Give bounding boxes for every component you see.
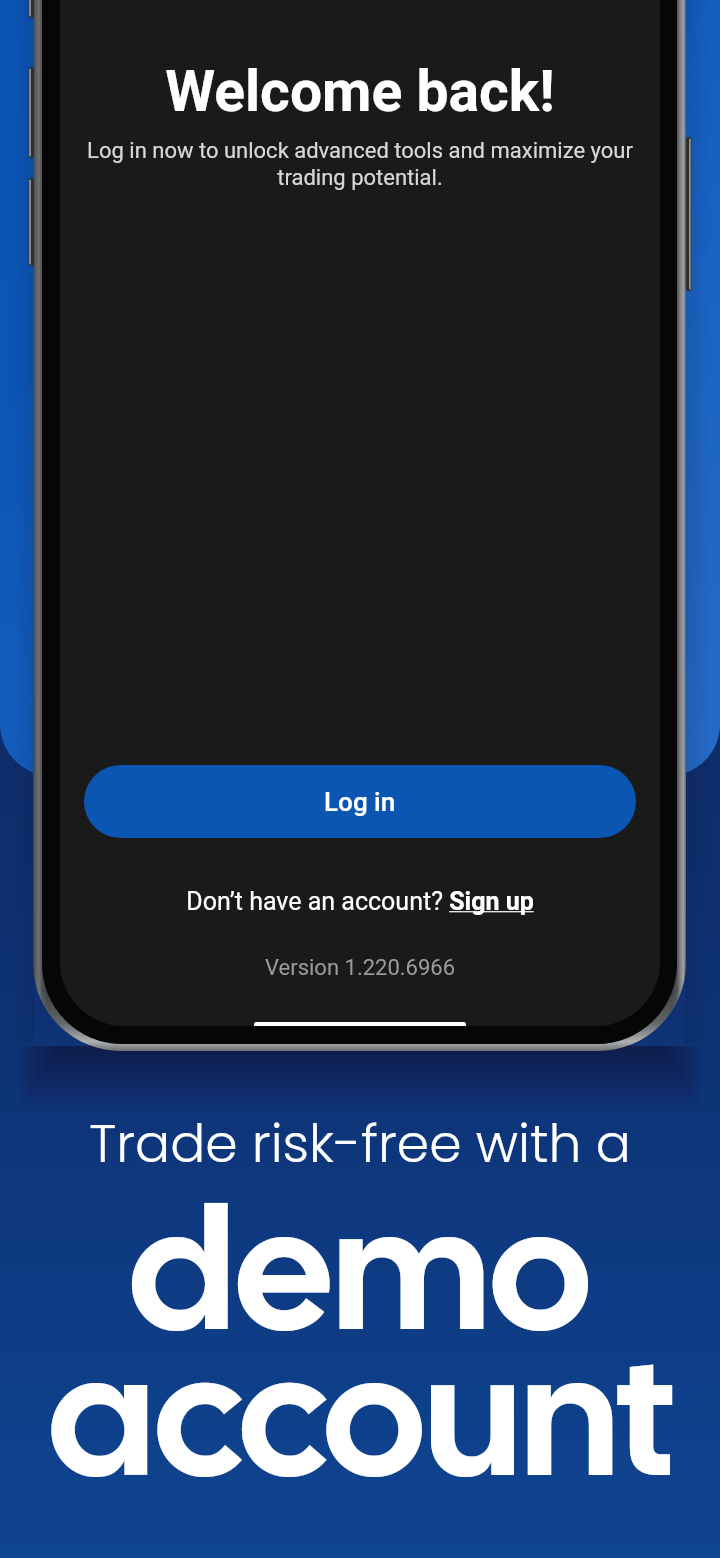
staticText: Welcome back! <box>165 58 555 125</box>
staticText: Log in <box>324 787 396 817</box>
staticText: Trade risk-free with a <box>89 1107 631 1180</box>
staticText: Don’t have an account? Sign up <box>186 887 534 916</box>
button[interactable]: Don’t have an account? Sign up <box>186 887 534 916</box>
staticText: Log in now to unlock advanced tools and … <box>86 138 634 190</box>
button[interactable]: Log in <box>84 765 636 838</box>
staticText: Version 1.220.6966 <box>265 955 456 981</box>
staticText: account <box>48 1303 673 1527</box>
staticText: demo <box>128 1157 592 1381</box>
